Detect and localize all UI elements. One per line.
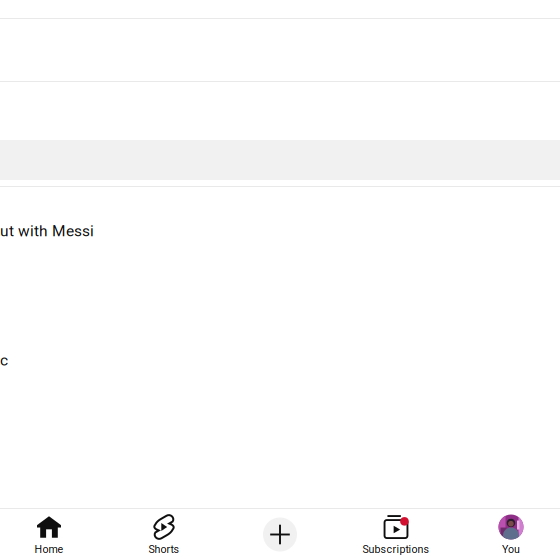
staticText: c — [0, 351, 8, 369]
staticText: ut with Messi — [0, 222, 94, 240]
staticText: You — [502, 543, 520, 555]
button[interactable]: Subscriptions — [340, 509, 452, 560]
button[interactable]: ut with Messi — [0, 187, 560, 508]
button[interactable]: You — [455, 509, 560, 560]
staticText: Home — [34, 543, 63, 555]
button[interactable] — [0, 82, 560, 186]
button[interactable]: Create — [224, 509, 336, 560]
staticText: Shorts — [148, 543, 179, 555]
button[interactable]: Shorts — [108, 509, 220, 560]
staticText: Subscriptions — [362, 543, 429, 555]
button[interactable]: Home — [0, 509, 105, 560]
